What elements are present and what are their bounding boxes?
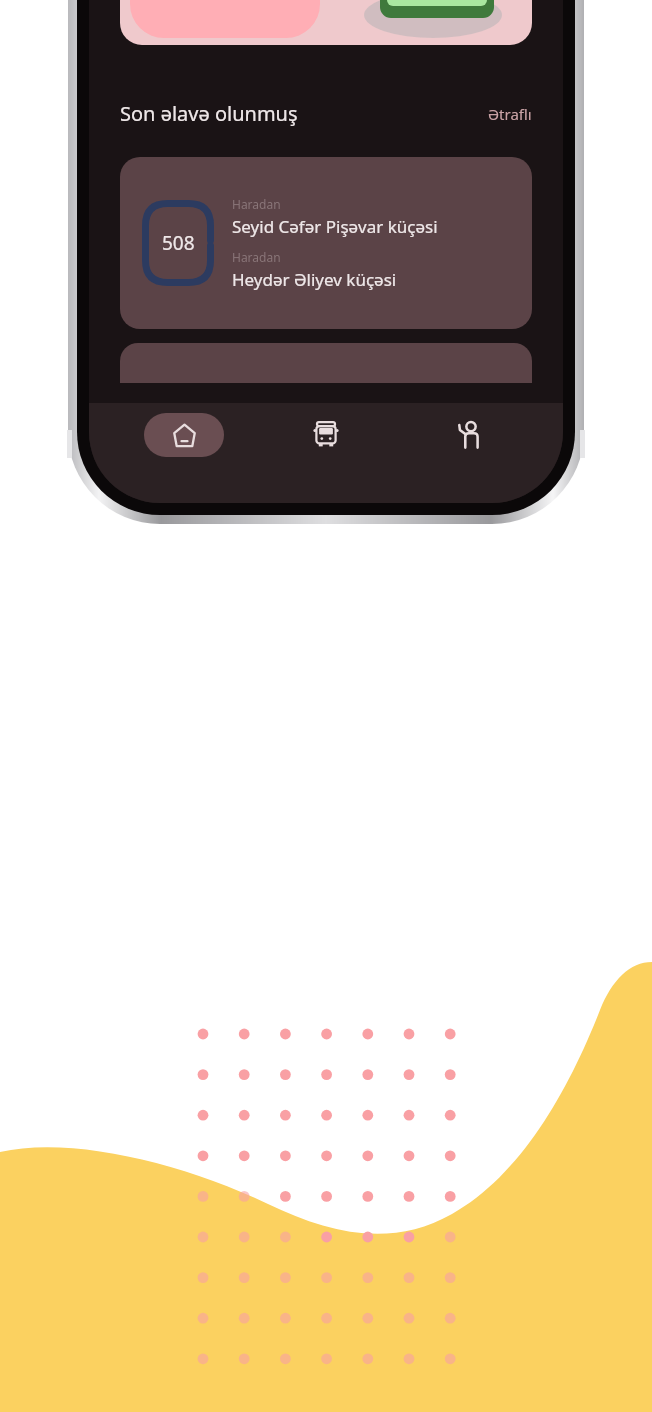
button[interactable]: Profile: [428, 413, 508, 457]
button[interactable]: Home: [144, 413, 224, 457]
button[interactable]: Buses: [286, 413, 366, 457]
staticText: 508: [162, 230, 195, 256]
button[interactable]: Ətraflı: [488, 104, 532, 124]
staticText: Seyid Cəfər Pişəvar küçəsi: [232, 215, 438, 238]
button[interactable]: 508: [120, 157, 532, 329]
staticText: Son əlavə olunmuş: [120, 100, 298, 127]
button[interactable]: [120, 0, 532, 45]
staticText: Haradan: [232, 196, 281, 212]
staticText: Heydər Əliyev küçəsi: [232, 268, 397, 291]
staticText: Haradan: [232, 249, 281, 265]
button[interactable]: [120, 343, 532, 383]
staticText: Ətraflı: [488, 104, 532, 124]
